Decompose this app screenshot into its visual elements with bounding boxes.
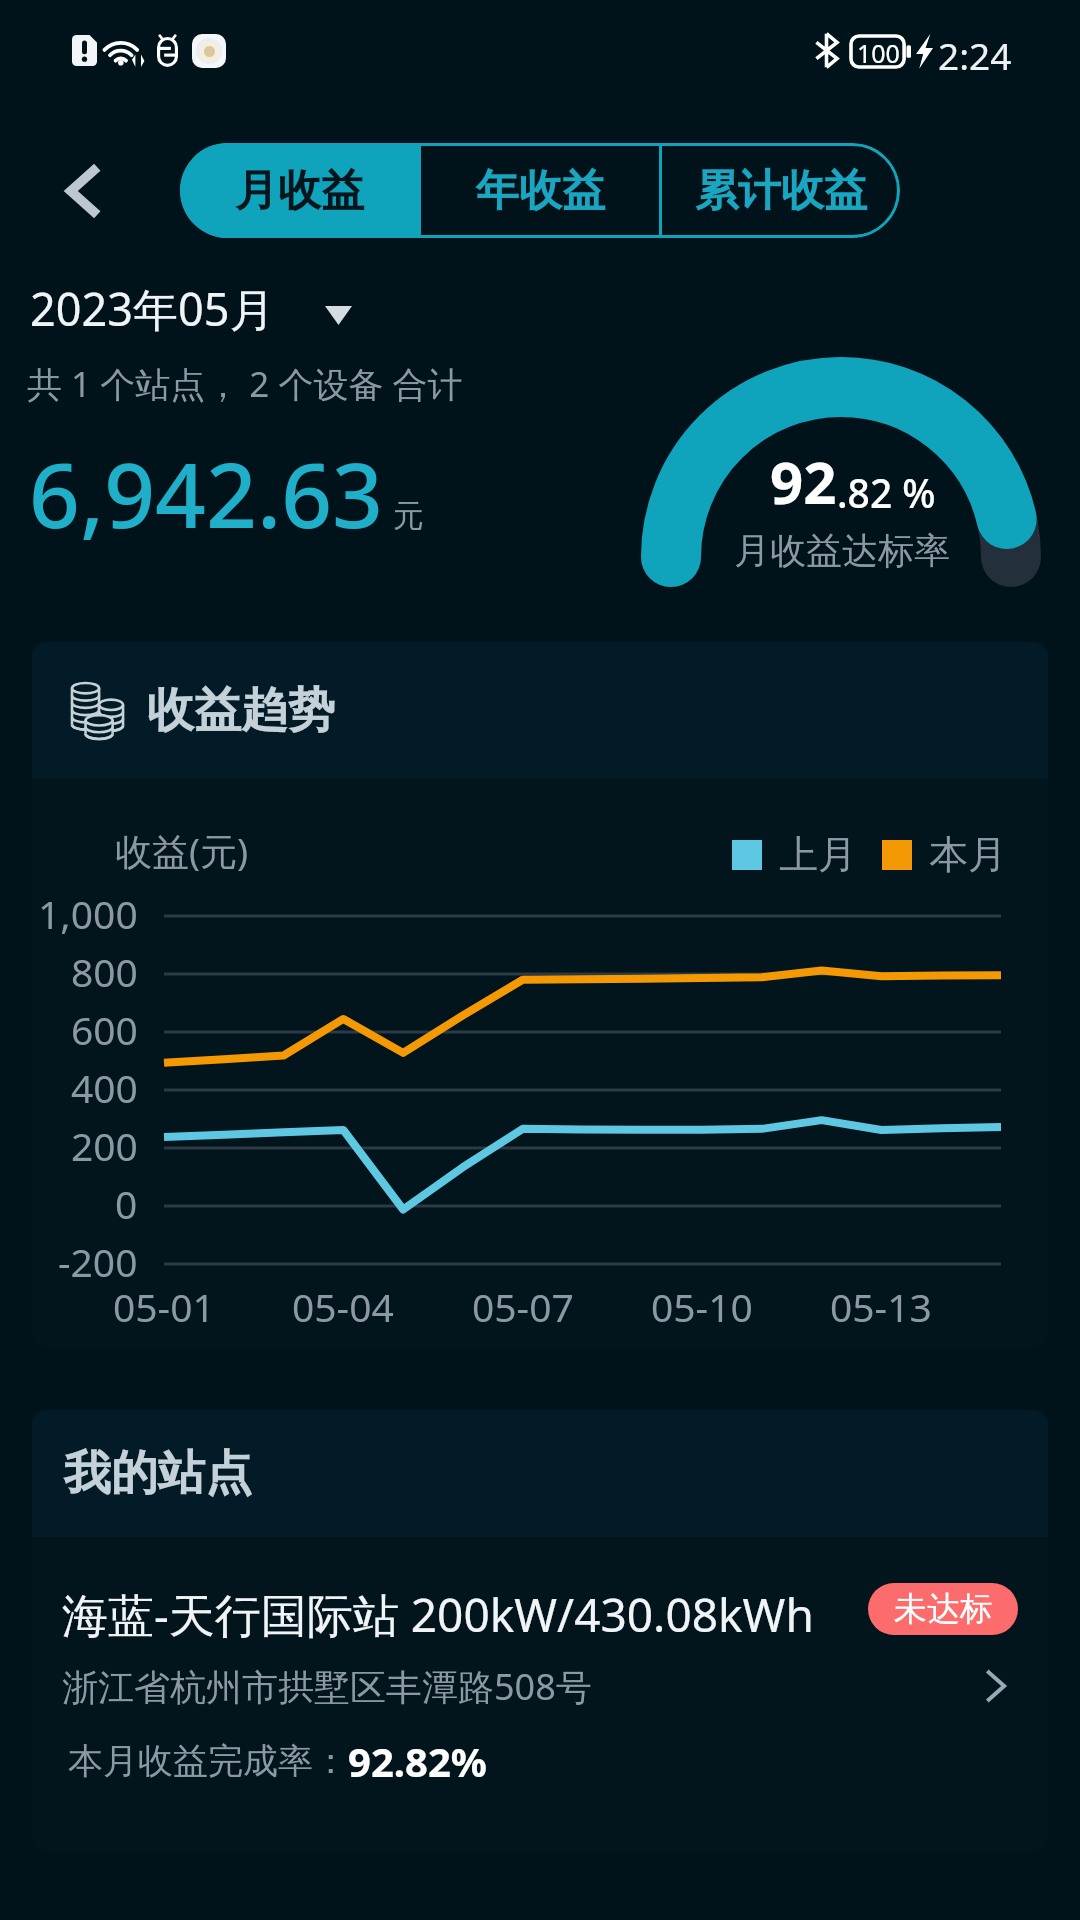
staticText: 200	[71, 1119, 138, 1171]
staticText: 92.82%	[348, 1734, 487, 1788]
staticText: 年收益	[476, 164, 605, 218]
staticText: 05-13	[830, 1280, 932, 1333]
staticText: 我的站点	[64, 1444, 252, 1503]
staticText: 本月收益完成率：	[68, 1739, 348, 1783]
staticText: 600	[71, 1003, 138, 1055]
button[interactable]: 月收益	[180, 143, 418, 238]
button[interactable]: 累计收益	[662, 143, 900, 238]
staticText: 6,942.63	[29, 433, 383, 554]
staticText: 05-04	[292, 1280, 394, 1333]
staticText: 共 1 个站点， 2 个设备 合计	[27, 360, 463, 408]
staticText: 05-07	[472, 1280, 574, 1333]
button[interactable]: Back	[45, 155, 119, 227]
staticText: 月收益达标率	[734, 528, 950, 573]
button[interactable]: 海蓝-天行国际站 200kW/430.08kWh	[32, 1538, 1048, 1850]
staticText: 海蓝-天行国际站 200kW/430.08kWh	[62, 1583, 814, 1646]
staticText: 上月	[779, 830, 857, 879]
staticText: 2:24	[938, 30, 1012, 80]
button[interactable]: 2023年05月	[24, 272, 360, 340]
staticText: 0	[115, 1177, 138, 1229]
staticText: 92	[770, 442, 837, 521]
staticText: 800	[71, 945, 138, 997]
staticText: 元	[393, 496, 424, 535]
staticText: 收益趋势	[147, 681, 335, 740]
staticText: 本月	[929, 830, 1007, 879]
staticText: 05-01	[113, 1280, 215, 1333]
staticText: 月收益	[235, 164, 364, 218]
staticText: 2023年05月	[30, 278, 275, 339]
staticText: 400	[71, 1061, 138, 1113]
staticText: .82 %	[837, 466, 936, 519]
staticText: -200	[58, 1235, 138, 1287]
staticText: 100	[857, 36, 900, 67]
staticText: 收益(元)	[115, 825, 249, 876]
button[interactable]: 年收益	[421, 143, 659, 238]
staticText: 浙江省杭州市拱墅区丰潭路508号	[62, 1662, 592, 1711]
staticText: 05-10	[651, 1280, 753, 1333]
staticText: 1,000	[38, 887, 138, 939]
staticText: 累计收益	[695, 164, 867, 218]
staticText: 未达标	[894, 1588, 993, 1630]
